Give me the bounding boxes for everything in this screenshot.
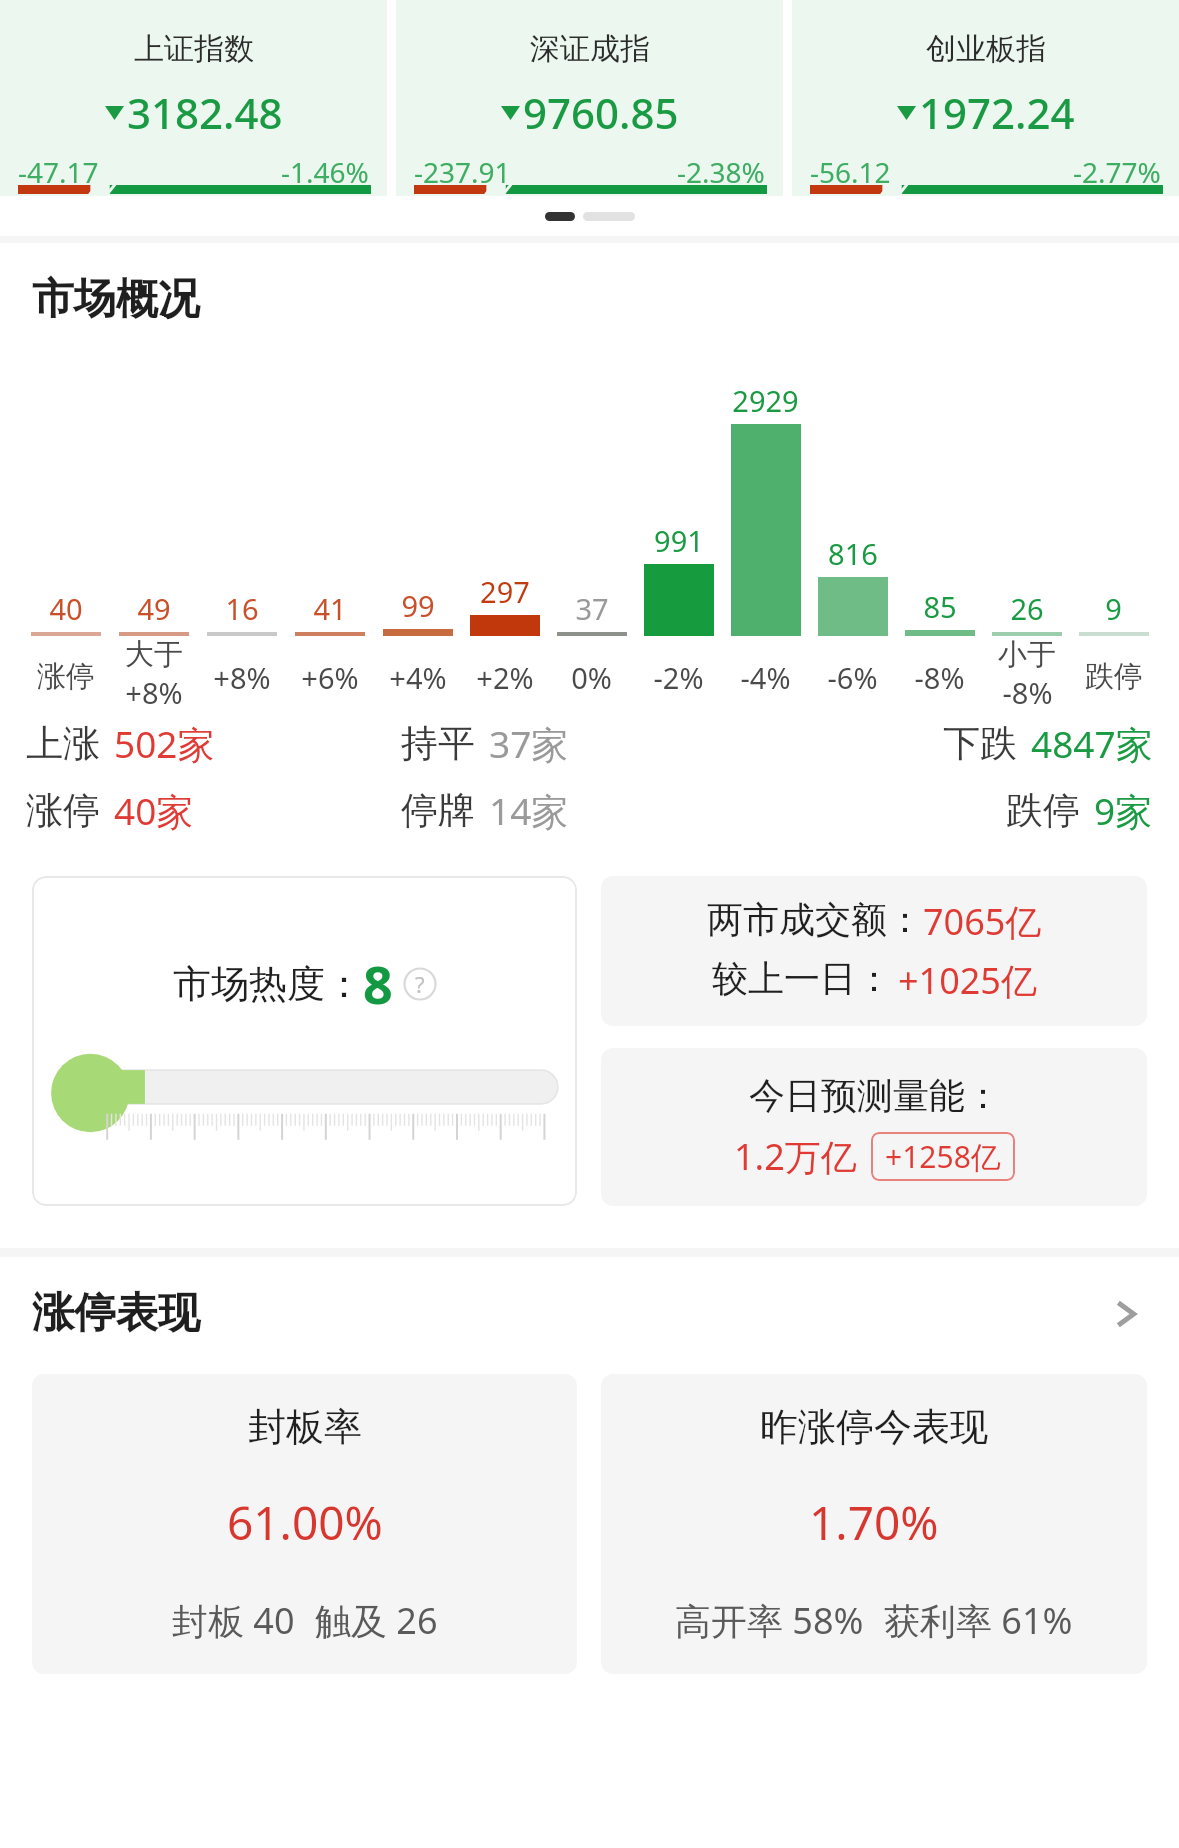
- button[interactable]: 昨涨停今表现: [601, 1374, 1147, 1674]
- staticText: 市场热度：: [173, 960, 363, 1008]
- staticText: -8%: [914, 658, 965, 697]
- staticText: 61.00%: [227, 1491, 383, 1554]
- staticText: +4%: [389, 658, 447, 697]
- button[interactable]: 市场热度：: [32, 876, 577, 1206]
- staticText: +2%: [476, 658, 534, 697]
- staticText: -2%: [653, 658, 704, 697]
- staticText: +1025亿: [898, 956, 1037, 1005]
- staticText: 26: [1010, 589, 1044, 628]
- staticText: 两市成交额：: [707, 897, 923, 942]
- staticText: 9760.85: [523, 84, 679, 141]
- staticText: 49: [137, 589, 171, 628]
- staticText: 跌停: [1085, 658, 1143, 695]
- staticText: 上证指数: [134, 30, 254, 68]
- staticText: 较上一日：: [712, 956, 892, 1001]
- staticText: 小于: [998, 636, 1056, 673]
- staticText: -2.77%: [1073, 153, 1161, 191]
- staticText: 99: [401, 586, 435, 625]
- staticText: 7065亿: [923, 897, 1042, 946]
- staticText: 8: [363, 948, 393, 1019]
- staticText: 深证成指: [530, 30, 650, 68]
- staticText: 37: [575, 589, 609, 628]
- staticText: 1972.24: [919, 84, 1075, 141]
- staticText: 市场概况: [32, 273, 200, 326]
- button[interactable]: 上证指数: [0, 0, 387, 196]
- staticText: +1258亿: [885, 1136, 1001, 1177]
- staticText: -6%: [827, 658, 878, 697]
- staticText: 下跌: [943, 720, 1017, 767]
- staticText: 今日预测量能：: [749, 1073, 1001, 1118]
- staticText: 16: [225, 589, 259, 628]
- staticText: 9: [1105, 589, 1122, 628]
- button[interactable]: 今日预测量能：: [601, 1048, 1147, 1206]
- button[interactable]: 涨停表现: [32, 1287, 1147, 1340]
- staticText: 停牌: [401, 787, 475, 834]
- staticText: 991: [654, 521, 704, 560]
- staticText: 上涨: [26, 720, 100, 767]
- staticText: 41: [313, 589, 347, 628]
- staticText: 昨涨停今表现: [760, 1403, 988, 1451]
- staticText: 4847家: [1031, 718, 1153, 769]
- button[interactable]: 帮助: [403, 967, 437, 1001]
- button[interactable]: 封板率: [32, 1374, 577, 1674]
- staticText: 1.2万亿: [734, 1132, 857, 1181]
- staticText: -1.46%: [281, 153, 369, 191]
- staticText: 大于: [125, 636, 183, 673]
- staticText: -237.91: [414, 153, 511, 191]
- staticText: 获利率 61%: [884, 1596, 1073, 1645]
- staticText: 85: [923, 587, 957, 626]
- button[interactable]: 深证成指: [396, 0, 783, 196]
- staticText: 创业板指: [926, 30, 1046, 68]
- staticText: 0%: [571, 658, 612, 697]
- staticText: 封板率: [248, 1403, 362, 1451]
- staticText: 37家: [489, 718, 569, 769]
- staticText: 40家: [114, 785, 194, 836]
- staticText: 涨停表现: [32, 1287, 200, 1340]
- other: 更多: [1105, 1293, 1147, 1335]
- staticText: 封板 40: [172, 1596, 295, 1645]
- staticText: -4%: [740, 658, 791, 697]
- staticText: 1.70%: [809, 1491, 939, 1554]
- staticText: -47.17: [18, 153, 99, 191]
- staticText: 跌停: [1006, 787, 1080, 834]
- staticText: ?: [415, 969, 425, 999]
- staticText: 涨停: [26, 787, 100, 834]
- staticText: 816: [828, 534, 878, 573]
- staticText: 持平: [401, 720, 475, 767]
- staticText: +8%: [213, 658, 271, 697]
- staticText: 高开率 58%: [675, 1596, 864, 1645]
- staticText: 涨停: [37, 658, 95, 695]
- staticText: -2.38%: [677, 153, 765, 191]
- staticText: 3182.48: [127, 84, 283, 141]
- staticText: 502家: [114, 718, 215, 769]
- staticText: +6%: [301, 658, 359, 697]
- staticText: 297: [480, 572, 530, 611]
- staticText: 14家: [489, 785, 569, 836]
- button[interactable]: 两市成交额：: [601, 876, 1147, 1026]
- staticText: -8%: [1002, 673, 1053, 712]
- staticText: 9家: [1094, 785, 1153, 836]
- staticText: 触及 26: [315, 1596, 438, 1645]
- staticText: +8%: [125, 673, 183, 712]
- staticText: 2929: [732, 381, 799, 420]
- button[interactable]: 创业板指: [792, 0, 1179, 196]
- staticText: 40: [49, 589, 83, 628]
- staticText: -56.12: [810, 153, 891, 191]
